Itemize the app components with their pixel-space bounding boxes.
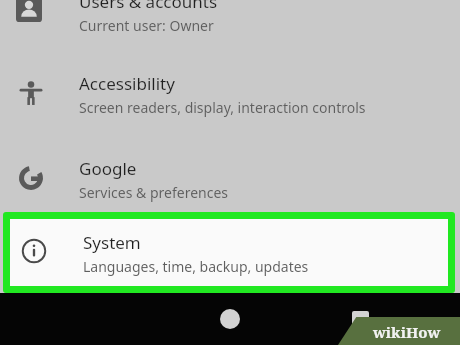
staticText: Services & preferences (79, 183, 229, 202)
staticText: Users & accounts (79, 0, 218, 13)
staticText: System (83, 231, 141, 254)
staticText: Current user: Owner (79, 16, 214, 35)
button[interactable]: Home (202, 293, 258, 345)
button[interactable]: Google (0, 148, 460, 216)
button[interactable]: Recent apps (332, 293, 388, 345)
staticText: wiki (373, 322, 406, 342)
staticText: Languages, time, backup, updates (83, 257, 309, 276)
button[interactable]: System (10, 219, 448, 286)
staticText: Accessibility (79, 72, 175, 95)
staticText: How (406, 322, 441, 342)
staticText: Google (79, 157, 137, 180)
staticText: Screen readers, display, interaction con… (79, 98, 366, 117)
button[interactable]: Users & accounts (0, 0, 460, 32)
button[interactable]: Accessibility (0, 63, 460, 131)
